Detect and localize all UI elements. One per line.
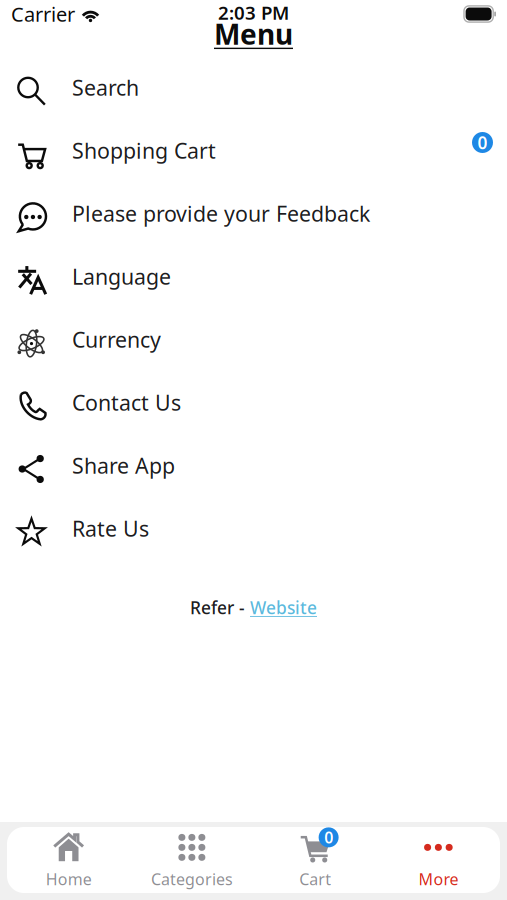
staticText: Menu bbox=[214, 15, 293, 53]
button[interactable]: Currency bbox=[0, 308, 507, 371]
staticText: Please provide your Feedback bbox=[72, 199, 370, 228]
staticText: Carrier bbox=[11, 1, 75, 27]
button[interactable]: Rate Us bbox=[0, 497, 507, 560]
button[interactable]: Home bbox=[7, 827, 130, 893]
staticText: 0 bbox=[477, 131, 487, 154]
button[interactable]: Please provide your Feedback bbox=[0, 182, 507, 245]
staticText: Website bbox=[250, 596, 317, 619]
staticText: Cart bbox=[299, 868, 331, 890]
button[interactable]: Search bbox=[0, 56, 507, 119]
button[interactable]: Shopping Cart bbox=[0, 119, 507, 182]
staticText: 2:03 PM bbox=[218, 0, 289, 25]
staticText: Search bbox=[72, 73, 139, 102]
staticText: Shopping Cart bbox=[72, 136, 216, 165]
button[interactable]: Categories bbox=[130, 827, 253, 893]
staticText: Currency bbox=[72, 325, 161, 354]
staticText: Refer - bbox=[190, 596, 250, 619]
staticText: Contact Us bbox=[72, 388, 181, 417]
button[interactable]: Website bbox=[250, 596, 317, 619]
staticText: Language bbox=[72, 262, 171, 291]
staticText: Home bbox=[46, 868, 92, 890]
button[interactable]: More bbox=[377, 827, 500, 893]
staticText: 0 bbox=[324, 827, 333, 848]
staticText: Share App bbox=[72, 451, 175, 480]
button[interactable]: Language bbox=[0, 245, 507, 308]
button[interactable]: 0 bbox=[253, 827, 377, 893]
button[interactable]: Share App bbox=[0, 434, 507, 497]
staticText: Rate Us bbox=[72, 514, 149, 543]
staticText: More bbox=[418, 868, 458, 890]
staticText: Categories bbox=[151, 868, 233, 890]
button[interactable]: Contact Us bbox=[0, 371, 507, 434]
